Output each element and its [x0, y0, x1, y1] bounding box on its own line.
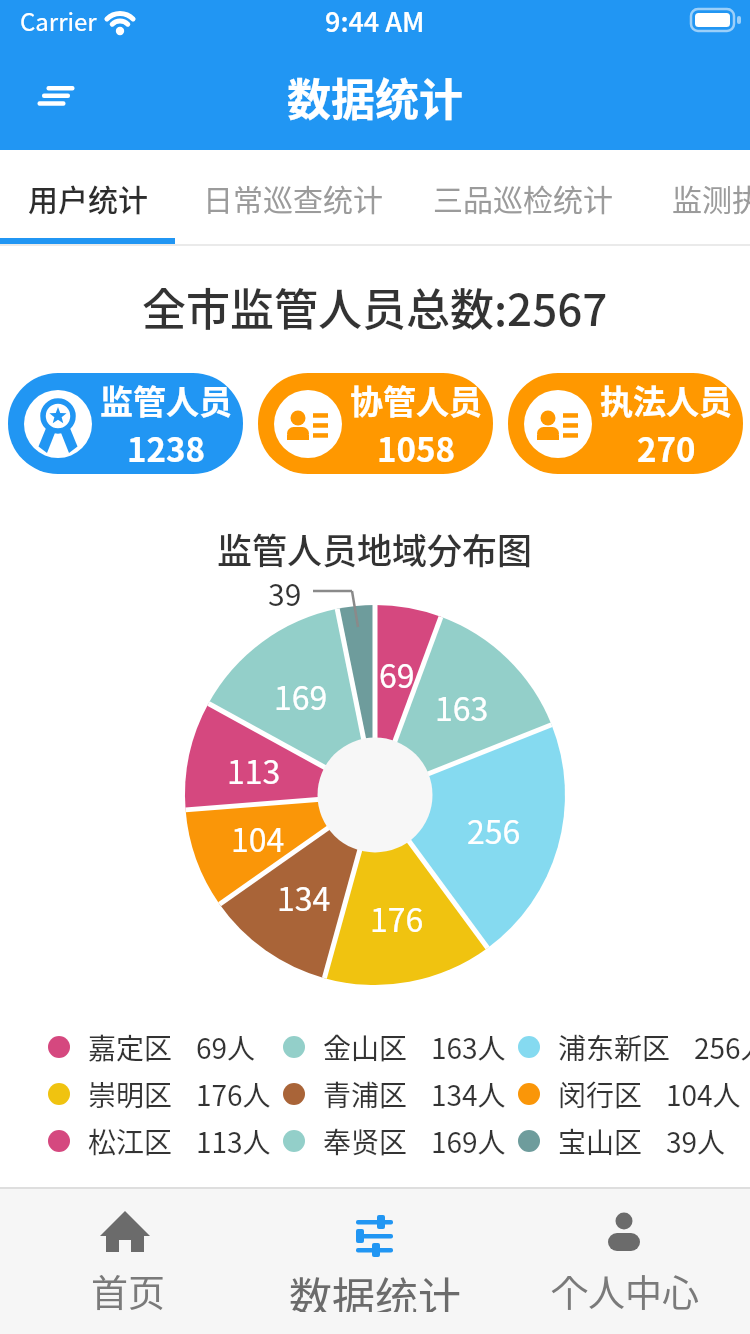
staticText: Carrier: [20, 3, 97, 38]
staticText: 176人: [196, 1074, 271, 1115]
staticText: 崇明区: [88, 1074, 173, 1115]
button[interactable]: [0, 1189, 250, 1334]
button[interactable]: [0, 150, 175, 246]
staticText: 163: [435, 684, 489, 728]
staticText: 134: [277, 874, 331, 918]
button[interactable]: [203, 150, 383, 246]
button[interactable]: [500, 1189, 750, 1334]
staticText: 嘉定区: [88, 1027, 173, 1068]
staticText: 金山区: [323, 1027, 408, 1068]
staticText: 104: [231, 815, 285, 859]
button[interactable]: [20, 70, 90, 126]
staticText: 松江区: [88, 1121, 173, 1162]
staticText: 169人: [431, 1121, 506, 1162]
staticText: 163人: [431, 1027, 506, 1068]
staticText: 宝山区: [558, 1121, 643, 1162]
staticText: 数据统计: [287, 65, 463, 125]
staticText: 256: [467, 807, 521, 851]
staticText: 协管人员: [350, 376, 482, 424]
staticText: 104人: [666, 1074, 741, 1115]
button[interactable]: 执法人员: [508, 373, 743, 474]
staticText: 个人中心: [551, 1264, 699, 1312]
staticText: 执法人员: [600, 376, 732, 424]
button[interactable]: [663, 150, 750, 246]
staticText: 三品巡检统计: [433, 176, 613, 219]
staticText: 9:44 AM: [325, 1, 425, 40]
staticText: 69: [379, 651, 415, 695]
staticText: 用户统计: [28, 176, 148, 219]
staticText: 256人: [694, 1027, 750, 1068]
staticText: 113人: [196, 1121, 271, 1162]
staticText: 奉贤区: [323, 1121, 408, 1162]
staticText: 监管人员地域分布图: [217, 523, 533, 574]
staticText: 监管人员: [100, 376, 232, 424]
staticText: 日常巡查统计: [203, 176, 383, 219]
staticText: 169: [274, 673, 328, 717]
staticText: 134人: [431, 1074, 506, 1115]
staticText: 1238: [127, 424, 205, 472]
button[interactable]: [250, 1189, 500, 1334]
staticText: 69人: [196, 1027, 256, 1068]
button[interactable]: 协管人员: [258, 373, 493, 474]
staticText: 数据统计: [289, 1264, 461, 1312]
staticText: 全市监管人员总数:2567: [142, 275, 608, 339]
button[interactable]: [433, 150, 613, 246]
staticText: 青浦区: [323, 1074, 408, 1115]
staticText: 176: [370, 895, 424, 939]
staticText: 首页: [91, 1264, 165, 1312]
staticText: 闵行区: [558, 1074, 643, 1115]
staticText: 113: [227, 747, 281, 791]
staticText: 39: [268, 571, 302, 614]
staticText: 监测执法统计: [672, 176, 750, 219]
button[interactable]: 监管人员: [8, 373, 243, 474]
staticText: 1058: [377, 424, 455, 472]
staticText: 浦东新区: [558, 1027, 671, 1068]
staticText: 270: [637, 424, 696, 472]
staticText: 39人: [666, 1121, 726, 1162]
